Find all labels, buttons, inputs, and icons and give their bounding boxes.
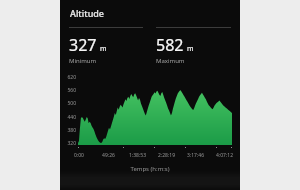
staticText: Temps (h:m:s) xyxy=(60,165,240,173)
button[interactable]: 582 xyxy=(156,34,231,65)
button[interactable]: 327 xyxy=(69,34,143,65)
button[interactable]: Altitude over time chart xyxy=(60,74,240,152)
staticText: 380 xyxy=(61,127,76,134)
staticText: m xyxy=(100,44,107,54)
button[interactable]: Altitude xyxy=(60,5,240,21)
staticText: 1:38:53 xyxy=(123,152,152,159)
staticText: 560 xyxy=(61,87,76,94)
staticText: 4:07:12 xyxy=(210,152,239,159)
staticText: 582 xyxy=(156,34,184,56)
staticText: 620 xyxy=(61,74,76,81)
staticText: 320 xyxy=(61,140,76,147)
staticText: 440 xyxy=(61,114,76,121)
staticText: 327 xyxy=(69,34,97,56)
staticText: 500 xyxy=(61,100,76,107)
staticText: Minimum xyxy=(69,57,97,65)
staticText: 3:17:46 xyxy=(181,152,210,159)
staticText: 49:26 xyxy=(94,152,123,159)
staticText: Maximum xyxy=(156,57,185,65)
staticText: 2:28:19 xyxy=(152,152,181,159)
staticText: m xyxy=(187,44,194,54)
staticText: Altitude xyxy=(70,7,105,19)
staticText: 0:00 xyxy=(64,152,94,159)
